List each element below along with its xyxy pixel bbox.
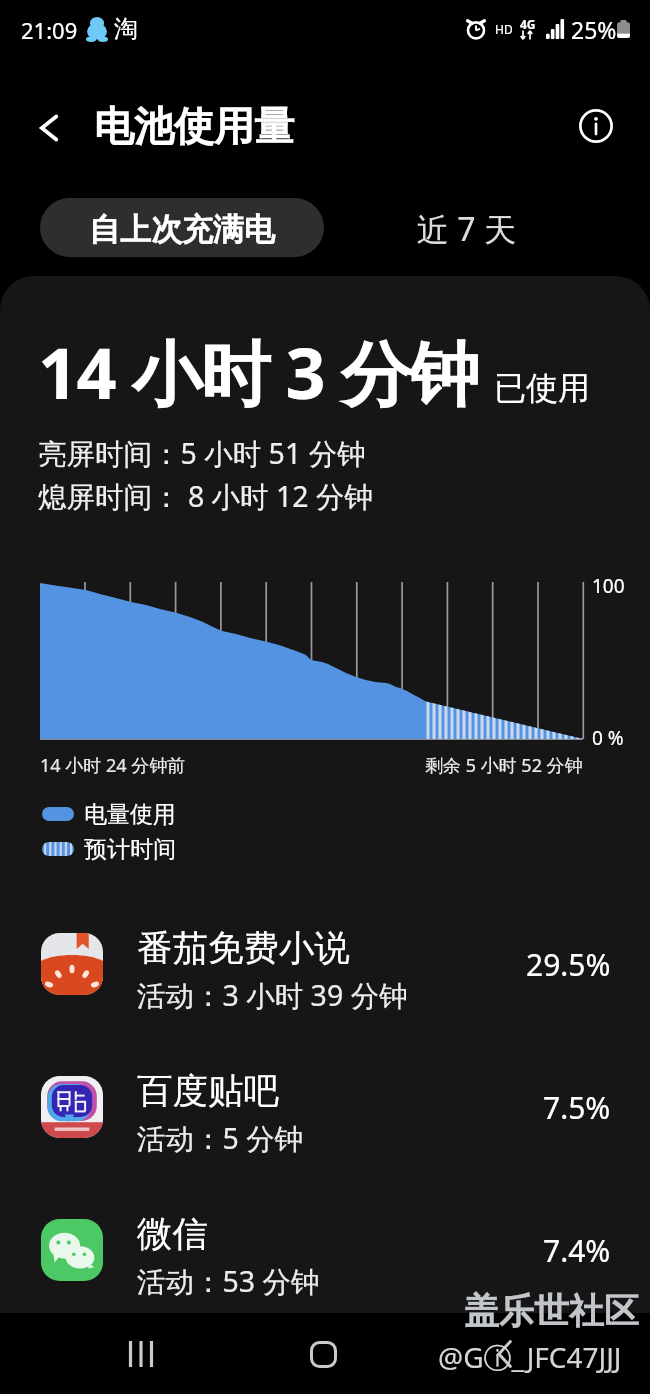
button[interactable]: Back — [26, 104, 74, 152]
button[interactable]: Home — [283, 1316, 363, 1392]
button[interactable]: Back — [465, 1316, 545, 1392]
staticText: 盖乐世社区 — [464, 1289, 639, 1333]
staticText: 25% — [571, 14, 617, 45]
staticText: 100 — [592, 573, 625, 599]
staticText: 百度贴吧 — [137, 1069, 279, 1114]
button[interactable]: 番茄免费小说 — [0, 892, 650, 1036]
staticText: 番茄免费小说 — [137, 926, 350, 971]
staticText: 21:09 — [21, 15, 78, 45]
staticText: HD — [495, 21, 513, 37]
staticText: 活动：3 小时 39 分钟 — [137, 976, 408, 1015]
staticText: 4G — [520, 16, 536, 32]
staticText: 自上次充满电 — [89, 210, 275, 249]
staticText: 活动：53 分钟 — [137, 1262, 320, 1301]
button[interactable]: 微信 — [0, 1178, 650, 1322]
button[interactable]: 百度贴吧 — [0, 1035, 650, 1179]
staticText: 7.4% — [543, 1230, 611, 1271]
staticText: 29.5% — [526, 944, 611, 985]
staticText: 14 小时 3 分钟 — [38, 324, 478, 420]
staticText: 7.5% — [543, 1087, 611, 1128]
staticText: 预计时间 — [84, 835, 176, 864]
button[interactable]: 自上次充满电 — [40, 198, 324, 257]
staticText: 电池使用量 — [94, 101, 294, 151]
staticText: 近 7 天 — [417, 207, 516, 251]
staticText: 14 小时 24 分钟前 — [40, 753, 186, 778]
staticText: @Gⓘ_JFC47JJJ — [438, 1338, 622, 1376]
staticText: 活动：5 分钟 — [137, 1119, 304, 1158]
button[interactable]: Recent apps — [101, 1316, 181, 1392]
staticText: 微信 — [137, 1212, 208, 1257]
staticText: 电量使用 — [84, 800, 176, 829]
button[interactable]: Information — [574, 104, 618, 148]
staticText: 淘 — [114, 14, 138, 44]
staticText: 剩余 5 小时 52 分钟 — [425, 753, 583, 778]
staticText: 0 % — [592, 725, 624, 751]
staticText: 亮屏时间：5 小时 51 分钟 — [38, 434, 366, 473]
staticText: 已使用 — [494, 368, 590, 408]
button[interactable]: 近 7 天 — [340, 198, 590, 257]
staticText: 熄屏时间： 8 小时 12 分钟 — [38, 477, 374, 516]
